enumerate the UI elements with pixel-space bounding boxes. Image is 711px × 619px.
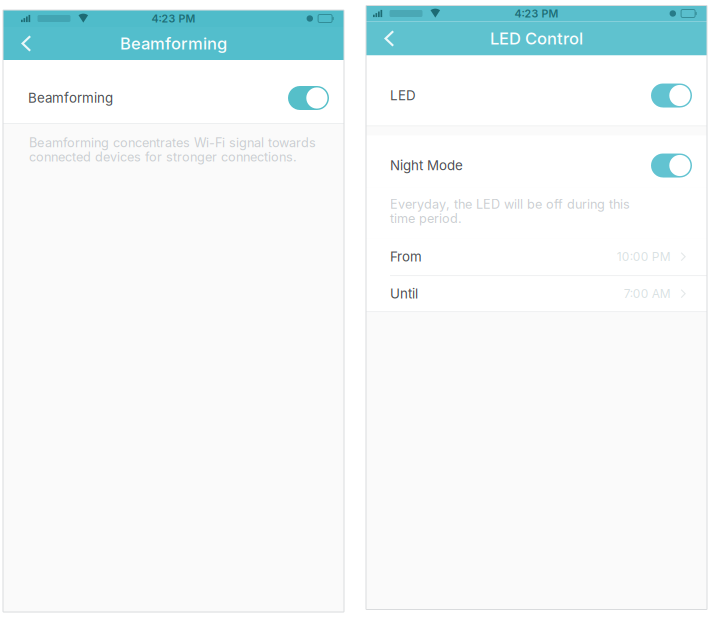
staticText: 4:23 PM — [514, 7, 558, 20]
staticText: Everyday, the LED will be off during thi… — [390, 196, 630, 212]
button[interactable]: LED — [366, 55, 707, 125]
button[interactable]: Back — [366, 22, 410, 54]
staticText: Beamforming — [120, 33, 227, 53]
staticText: connected devices for stronger connectio… — [29, 149, 297, 165]
button[interactable]: Night Mode — [366, 135, 707, 187]
staticText: time period. — [390, 211, 462, 226]
button[interactable]: Until — [366, 276, 707, 312]
staticText: 4:23 PM — [151, 12, 195, 25]
staticText: Night Mode — [390, 157, 463, 173]
staticText: From — [390, 249, 422, 265]
staticText: Beamforming concentrates Wi-Fi signal to… — [29, 135, 316, 150]
staticText: Beamforming — [28, 90, 113, 106]
button[interactable]: Beamforming — [3, 60, 344, 123]
staticText: LED Control — [490, 28, 583, 48]
button[interactable]: From — [366, 238, 707, 276]
staticText: LED — [390, 87, 416, 103]
staticText: 10:00 PM — [617, 249, 671, 264]
staticText: 7:00 AM — [624, 286, 671, 301]
button[interactable]: Back — [3, 27, 47, 59]
staticText: Until — [390, 286, 418, 302]
